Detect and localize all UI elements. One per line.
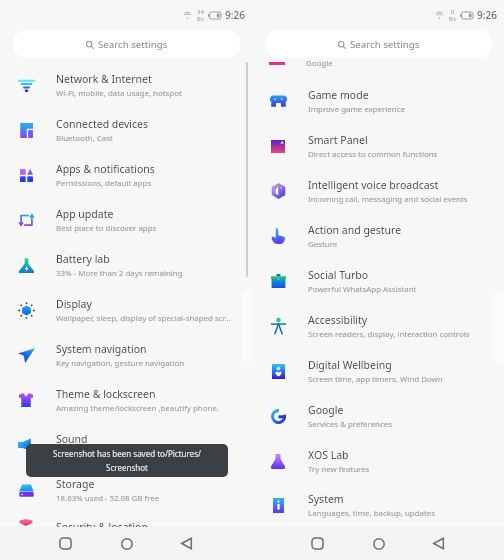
button[interactable]: Action and gesture	[252, 214, 504, 259]
staticText: 18.63% used - 52.08 GB free	[56, 493, 160, 504]
staticText: B/s	[197, 16, 204, 22]
button[interactable]: Sound	[0, 423, 252, 468]
staticText: Theme & lockscreen	[56, 387, 156, 401]
button[interactable]: Accessibility	[252, 304, 504, 349]
button[interactable]: Google	[252, 394, 504, 439]
button[interactable]: Theme & lockscreen	[0, 378, 252, 423]
staticText: Search settings	[98, 38, 168, 51]
button[interactable]: Security & location	[0, 520, 252, 527]
staticText: 9:26	[477, 8, 497, 22]
button[interactable]: Home	[365, 530, 392, 557]
staticText: Storage	[56, 477, 95, 491]
button[interactable]: Intelligent voice broadcast	[252, 169, 504, 214]
button[interactable]: System	[252, 484, 504, 527]
staticText: Permissions, default apps	[56, 178, 152, 189]
button[interactable]: Display	[0, 288, 252, 333]
staticText: Improve game experience	[308, 104, 405, 115]
button[interactable]: Digital Wellbeing	[252, 349, 504, 394]
staticText: Smart Panel	[308, 133, 368, 147]
staticText: Google	[308, 403, 344, 417]
staticText: Services & preferences	[308, 419, 392, 430]
staticText: Game mode	[308, 88, 369, 102]
button[interactable]: Connected devices	[0, 108, 252, 153]
staticText: 0	[451, 8, 455, 16]
staticText: App update	[56, 207, 114, 221]
button[interactable]: Back	[425, 530, 452, 557]
button[interactable]: Battery lab	[0, 243, 252, 288]
staticText: Apps & notifications	[56, 162, 155, 176]
button[interactable]: Social Turbo	[252, 259, 504, 304]
button[interactable]: Search settings	[265, 30, 492, 58]
staticText: Display	[56, 297, 92, 311]
staticText: Gesture	[308, 239, 338, 250]
staticText: Intelligent voice broadcast	[308, 178, 439, 192]
button[interactable]: Recents	[304, 530, 331, 557]
button[interactable]: Apps & notifications	[0, 153, 252, 198]
button[interactable]: Network & Internet	[0, 63, 252, 108]
staticText: Sound	[56, 432, 88, 446]
button[interactable]: XOS Lab	[252, 439, 504, 484]
button[interactable]: Game mode	[252, 79, 504, 124]
staticText: System	[308, 492, 344, 506]
staticText: Security & location	[56, 520, 148, 527]
staticText: Wallpaper, sleep, display of special-sha…	[56, 313, 231, 324]
staticText: Digital Wellbeing	[308, 358, 392, 372]
button[interactable]: Smart Panel	[252, 124, 504, 169]
staticText: Incoming call, messaging and social even…	[308, 194, 468, 205]
staticText: Screen readers, display, interaction con…	[308, 329, 470, 340]
staticText: Connected devices	[56, 117, 149, 131]
staticText: System navigation	[56, 342, 147, 356]
button[interactable]: Search settings	[13, 30, 240, 58]
staticText: Languages, time, backup, updates	[308, 508, 435, 519]
staticText: Try new features	[308, 464, 370, 475]
staticText: Bluetooth, Cast	[56, 133, 113, 144]
staticText: Key navigation, gesture navigation	[56, 358, 185, 369]
staticText: Screenshot has been saved to/Pictures/ S…	[53, 448, 201, 473]
staticText: 33% - More than 2 days remaining	[56, 268, 183, 279]
staticText: Action and gesture	[308, 223, 402, 237]
button[interactable]: Recents	[52, 530, 79, 557]
staticText: Screen time, app timers, Wind Down	[308, 374, 443, 385]
staticText: Accessibility	[308, 313, 368, 327]
staticText: 9:26	[225, 8, 245, 22]
staticText: XOS Lab	[308, 448, 349, 462]
staticText: Search settings	[350, 38, 420, 51]
staticText: Powerful WhatsApp Assistant	[308, 284, 417, 295]
staticText: B/s	[449, 16, 456, 22]
staticText: Social Turbo	[308, 268, 369, 282]
button[interactable]: App update	[0, 198, 252, 243]
button[interactable]: Back	[173, 530, 200, 557]
staticText: Amazing theme/lockscreen ,beautify phone…	[56, 403, 219, 414]
staticText: Battery lab	[56, 252, 110, 266]
staticText: Google	[306, 58, 333, 69]
staticText: Best place to discover apps	[56, 223, 157, 234]
button[interactable]: Storage	[0, 468, 252, 513]
staticText: Network & Internet	[56, 72, 152, 86]
staticText: Direct access to common functions	[308, 149, 438, 160]
staticText: 34	[197, 8, 204, 16]
staticText: Wi-Fi, mobile, data usage, hotspot	[56, 88, 182, 99]
button[interactable]: Home	[113, 530, 140, 557]
button[interactable]: System navigation	[0, 333, 252, 378]
